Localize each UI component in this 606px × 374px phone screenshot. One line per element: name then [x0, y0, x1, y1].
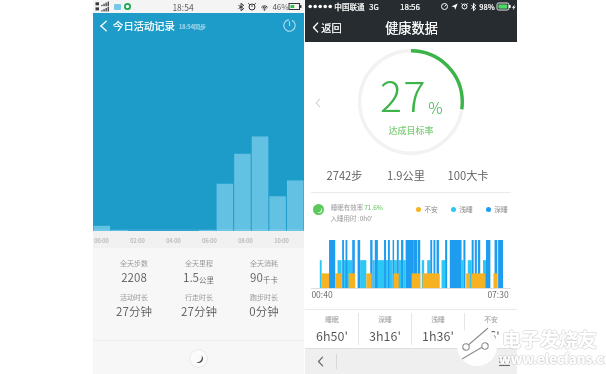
- staticText: 全天步数: [120, 258, 148, 268]
- staticText: %: [428, 95, 443, 118]
- staticText: 18:56: [400, 1, 420, 13]
- staticText: 返回: [321, 20, 342, 35]
- button[interactable]: 返回: [312, 13, 342, 42]
- staticText: 07:30: [487, 288, 509, 300]
- staticText: 不安: [484, 314, 498, 324]
- staticText: 睡眠有效率: [330, 202, 364, 211]
- staticText: www.elecfans.com: [500, 348, 606, 368]
- staticText: 06:00: [202, 236, 217, 244]
- staticText: 达成目标率: [388, 124, 434, 137]
- button[interactable]: 不安: [416, 204, 438, 214]
- button[interactable]: 深睡: [359, 310, 411, 348]
- staticText: 浅睡: [431, 314, 445, 324]
- staticText: www.elecfans.com: [499, 348, 606, 368]
- button[interactable]: 100大卡: [437, 164, 499, 186]
- staticText: 10:00: [274, 236, 289, 244]
- button[interactable]: Menu: [493, 349, 515, 374]
- button[interactable]: Back: [305, 349, 336, 374]
- staticText: 02:00: [130, 236, 145, 244]
- button[interactable]: 浅睡: [451, 204, 473, 214]
- staticText: 行走时长: [185, 292, 213, 302]
- staticText: 90: [250, 269, 263, 286]
- staticText: 不安: [424, 204, 438, 214]
- staticText: 6h50': [316, 326, 348, 344]
- button[interactable]: 跑步时长: [231, 292, 296, 320]
- button[interactable]: Back: [93, 13, 113, 38]
- staticText: 跑步时长: [250, 292, 278, 302]
- button[interactable]: 浅睡: [412, 310, 464, 348]
- button[interactable]: 行走时长: [166, 292, 231, 320]
- staticText: 全天里程: [185, 258, 213, 268]
- staticText: 深睡: [494, 204, 508, 214]
- button[interactable]: 活动时长: [102, 292, 166, 320]
- staticText: 健康数据: [385, 18, 438, 37]
- staticText: 公里: [199, 274, 214, 285]
- button[interactable]: 全天里程: [166, 258, 231, 286]
- staticText: 3G: [369, 1, 379, 12]
- staticText: 深睡: [378, 314, 392, 324]
- staticText: 0分钟: [249, 303, 279, 320]
- staticText: 电子发烧友: [502, 326, 598, 354]
- staticText: www.elecfans.com: [499, 349, 606, 369]
- staticText: 1.9公里: [387, 167, 425, 183]
- staticText: 100大卡: [447, 167, 489, 183]
- staticText: 睡眠: [325, 314, 339, 324]
- staticText: 电子发烧友: [502, 324, 598, 352]
- staticText: 27: [380, 64, 427, 120]
- staticText: 中国联通: [334, 1, 365, 12]
- staticText: 千卡: [263, 274, 278, 285]
- staticText: 98%: [479, 1, 495, 12]
- staticText: 04:00: [166, 236, 181, 244]
- button[interactable]: 1.9公里: [375, 164, 437, 186]
- button[interactable]: 全天步数: [102, 258, 166, 286]
- button[interactable]: 不安: [465, 310, 517, 348]
- button[interactable]: 2742步: [313, 164, 375, 186]
- staticText: 27分钟: [116, 303, 152, 320]
- staticText: 电子发烧友: [503, 325, 599, 353]
- button[interactable]: 深睡: [486, 204, 508, 214]
- staticText: 08:00: [238, 236, 253, 244]
- staticText: 电子发烧友: [501, 325, 597, 353]
- staticText: 2208: [121, 269, 147, 286]
- staticText: 2742步: [326, 167, 363, 183]
- staticText: 46%: [272, 1, 289, 13]
- staticText: 18:54同步: [179, 22, 206, 31]
- button[interactable]: Previous day: [311, 96, 325, 110]
- button[interactable]: Sleep mode: [189, 349, 208, 368]
- staticText: 今日活动记录: [113, 18, 175, 33]
- staticText: www.elecfans.com: [499, 347, 606, 367]
- button[interactable]: 全天消耗: [231, 258, 296, 286]
- button[interactable]: Sync: [277, 13, 301, 38]
- staticText: 00:40: [311, 288, 333, 300]
- staticText: 入睡用时 :0h0': [330, 213, 373, 222]
- staticText: 71.6%: [364, 202, 383, 211]
- button[interactable]: 睡眠: [305, 310, 358, 348]
- staticText: 活动时长: [120, 292, 148, 302]
- staticText: www.elecfans.com: [498, 348, 606, 368]
- staticText: 00:00: [94, 236, 109, 244]
- staticText: 浅睡: [459, 204, 473, 214]
- staticText: 3h16': [369, 326, 401, 344]
- staticText: 18:54: [172, 1, 194, 13]
- staticText: 56': [482, 326, 500, 344]
- staticText: 全天消耗: [250, 258, 278, 268]
- staticText: 1.5: [183, 269, 199, 286]
- staticText: 27分钟: [181, 303, 217, 320]
- staticText: 电子发烧友: [502, 325, 598, 353]
- staticText: 1h36': [422, 326, 454, 344]
